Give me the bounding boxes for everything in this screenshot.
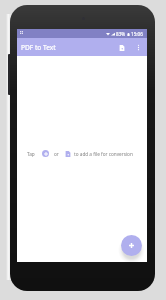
button[interactable]: More options	[132, 41, 145, 54]
staticText: to add a file for conversion	[74, 151, 133, 157]
staticText: PDF to Text	[21, 43, 56, 52]
button[interactable]: Add	[42, 150, 49, 157]
staticText: or	[54, 151, 59, 157]
staticText: 15:06	[131, 31, 143, 37]
button[interactable]: Open file	[115, 41, 128, 54]
staticText: 83%	[116, 31, 126, 37]
staticText: Tap	[27, 151, 35, 157]
button[interactable]: Add file	[121, 235, 142, 256]
